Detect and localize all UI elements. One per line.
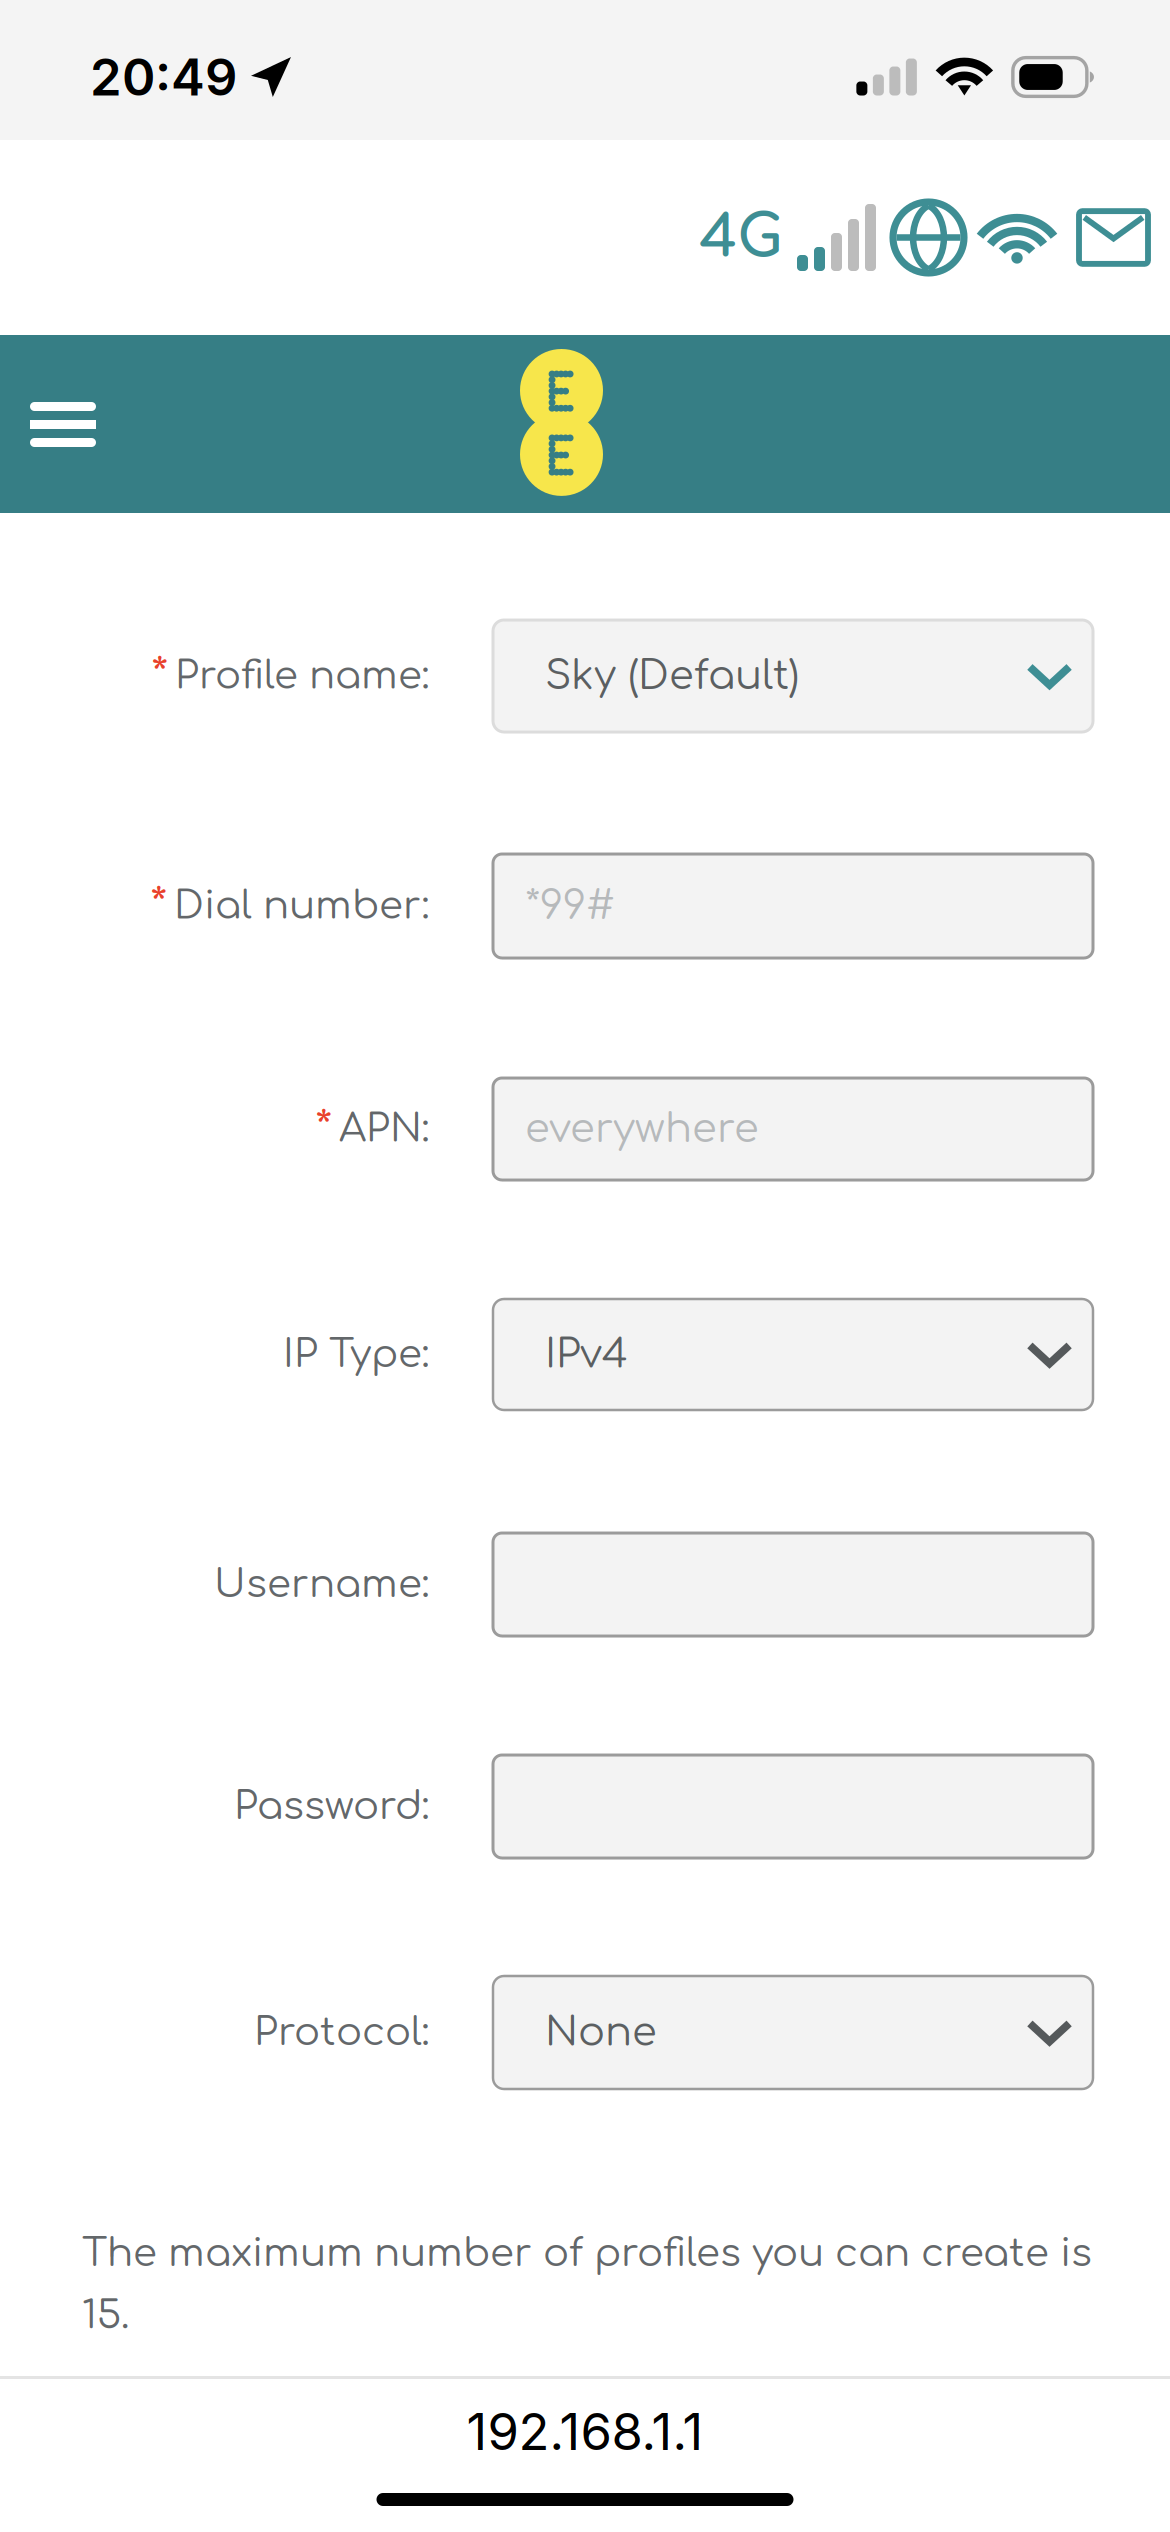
button[interactable]: Sky (Default) <box>493 620 1093 732</box>
staticText: 192.168.1.1 <box>466 2401 703 2462</box>
button[interactable]: *99# <box>493 854 1093 958</box>
staticText: Password: <box>234 1785 430 1828</box>
button[interactable]: 192.168.1.1 <box>0 2379 1170 2484</box>
staticText: *99# <box>525 884 615 928</box>
button[interactable]: IPv4 <box>493 1299 1093 1410</box>
button[interactable]: Menu <box>0 378 120 471</box>
staticText: 4G <box>699 205 783 270</box>
staticText: The maximum number of profiles you can c… <box>82 2232 1092 2337</box>
staticText: Dial number: <box>174 884 430 927</box>
button[interactable]: everywhere <box>493 1078 1093 1180</box>
staticText: IP Type: <box>283 1333 430 1376</box>
staticText: Protocol: <box>254 2011 430 2054</box>
staticText: Profile name: <box>175 654 430 697</box>
staticText: IPv4 <box>545 1332 628 1377</box>
staticText: 20:49 <box>90 46 237 108</box>
staticText: APN: <box>339 1107 430 1150</box>
staticText: * <box>150 881 167 931</box>
staticText: Sky (Default) <box>545 654 799 698</box>
staticText: None <box>545 2010 657 2055</box>
staticText: * <box>151 651 168 701</box>
button[interactable] <box>493 1755 1093 1858</box>
button[interactable] <box>493 1533 1093 1636</box>
button[interactable]: None <box>493 1976 1093 2089</box>
staticText: everywhere <box>525 1107 759 1151</box>
staticText: Username: <box>214 1563 430 1606</box>
staticText: * <box>315 1104 332 1154</box>
